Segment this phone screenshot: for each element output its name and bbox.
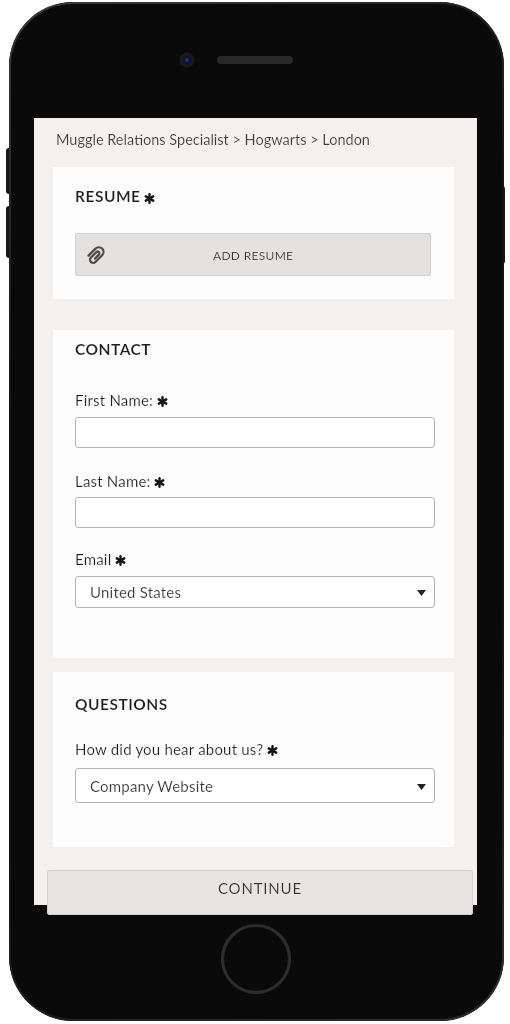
button[interactable] (75, 417, 435, 448)
staticText: CONTINUE (218, 879, 302, 897)
staticText: ADD RESUME (213, 248, 294, 262)
button[interactable]: United States (75, 576, 435, 608)
button[interactable]: ADD RESUME (75, 233, 431, 276)
staticText: How did you hear about us? (75, 740, 264, 758)
button[interactable]: Company Website (75, 768, 435, 803)
button[interactable]: Muggle Relations Specialist > Hogwarts >… (34, 118, 477, 166)
staticText: Last Name: (75, 472, 151, 490)
staticText: First Name: (75, 391, 154, 409)
staticText: Muggle Relations Specialist > Hogwarts >… (56, 131, 370, 148)
button[interactable] (75, 497, 435, 528)
button[interactable]: CONTINUE (47, 870, 473, 915)
staticText: Company Website (90, 777, 214, 795)
staticText: Email (75, 550, 112, 568)
staticText: QUESTIONS (75, 695, 168, 714)
staticText: United States (90, 583, 182, 601)
staticText: RESUME (75, 187, 141, 206)
staticText: CONTACT (75, 340, 152, 359)
